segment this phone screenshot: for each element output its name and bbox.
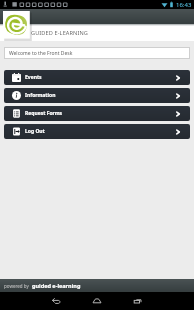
button[interactable]: Information	[4, 88, 190, 103]
staticText: Request Forms	[25, 110, 63, 117]
staticText: powered by	[4, 283, 29, 289]
staticText: Information	[25, 92, 56, 99]
button[interactable]: Recent apps	[123, 292, 153, 310]
staticText: GUIDED E-LEARNING	[31, 29, 88, 37]
staticText: Welcome to the Front Desk	[9, 50, 73, 57]
staticText: Events	[25, 74, 42, 81]
button[interactable]: Log Out	[4, 124, 190, 139]
button[interactable]: Back	[41, 292, 71, 310]
button[interactable]: Home	[82, 292, 112, 310]
button[interactable]: Request Forms	[4, 106, 190, 121]
staticText: Log Out	[25, 128, 45, 135]
staticText: guided e-learning	[32, 282, 81, 289]
button[interactable]: Events	[4, 70, 190, 85]
staticText: 16:43	[176, 1, 192, 9]
